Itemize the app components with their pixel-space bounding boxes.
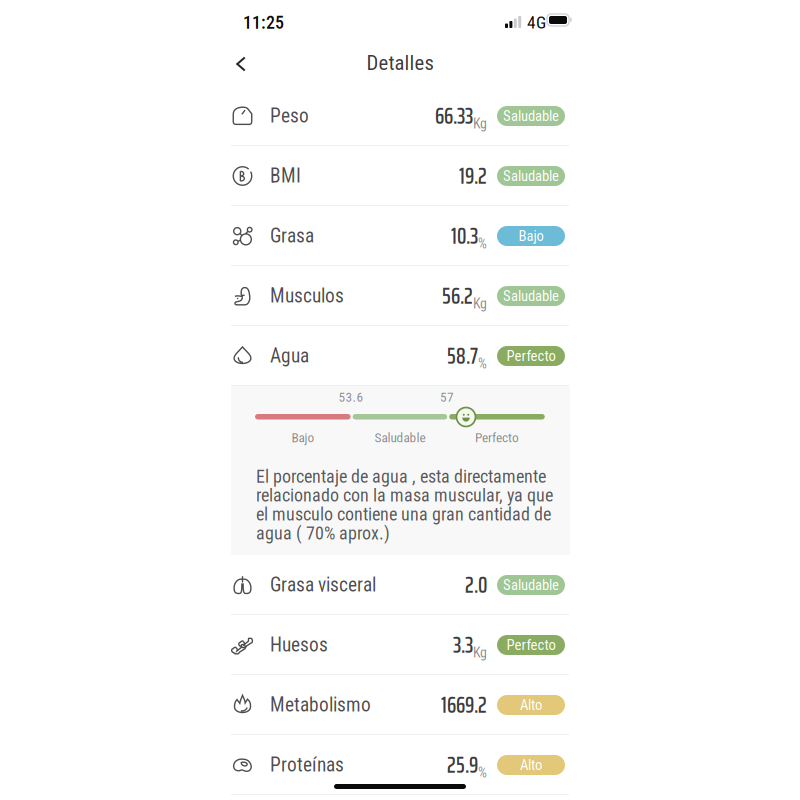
staticText: 66.33 [435,99,473,133]
staticText: Bajo [518,227,543,245]
staticText: 25.9 [447,748,478,782]
staticText: Kg [473,295,487,312]
staticText: 53.6 [338,389,363,405]
staticText: 2.0 [465,568,487,602]
staticText: Huesos [270,634,328,656]
staticText: 19.2 [459,159,487,193]
staticText: Perfecto [506,347,555,365]
staticText: 4G [527,12,546,33]
button[interactable]: Grasa [224,206,576,266]
staticText: Grasa visceral [270,574,376,596]
staticText: Peso [270,105,309,127]
staticText: Musculos [270,285,344,307]
staticText: Saludable [503,576,559,594]
button[interactable]: Grasa visceral [224,555,576,615]
staticText: El porcentaje de agua , esta directament… [256,466,546,487]
button[interactable]: Peso [224,86,576,146]
staticText: 3.3 [453,628,473,662]
staticText: 1669.2 [441,688,487,722]
staticText: Kg [473,644,487,661]
staticText: agua ( 70% aprox.) [256,523,390,544]
staticText: 11:25 [243,12,284,33]
staticText: Alto [520,756,542,774]
staticText: Kg [473,115,487,132]
staticText: Agua [270,345,309,367]
staticText: % [478,235,487,252]
staticText: 58.7 [447,339,478,373]
staticText: BMI [270,165,301,187]
staticText: Saludable [503,107,559,125]
staticText: Detalles [366,51,433,75]
staticText: % [478,355,487,372]
staticText: Perfecto [475,430,519,446]
button[interactable]: Huesos [224,615,576,675]
staticText: % [478,764,487,781]
staticText: Bajo [291,430,314,446]
staticText: 57 [440,389,454,405]
button[interactable]: Metabolismo [224,675,576,735]
button[interactable]: Back [224,47,258,81]
staticText: 56.2 [442,279,473,313]
staticText: Alto [520,696,542,714]
button[interactable]: Proteínas [224,735,576,795]
button[interactable]: Agua [224,326,576,386]
button[interactable]: Musculos [224,266,576,326]
staticText: Metabolismo [270,694,371,716]
staticText: Perfecto [506,636,555,654]
staticText: Saludable [503,287,559,305]
button[interactable]: BMI [224,146,576,206]
staticText: Saludable [374,430,425,446]
staticText: Proteínas [270,754,344,776]
staticText: 10.3 [451,219,478,253]
staticText: Grasa [270,225,314,247]
staticText: el musculo contiene una gran cantidad de [256,504,551,525]
staticText: Saludable [503,167,559,185]
staticText: relacionado con la masa muscular, ya que [256,485,553,506]
